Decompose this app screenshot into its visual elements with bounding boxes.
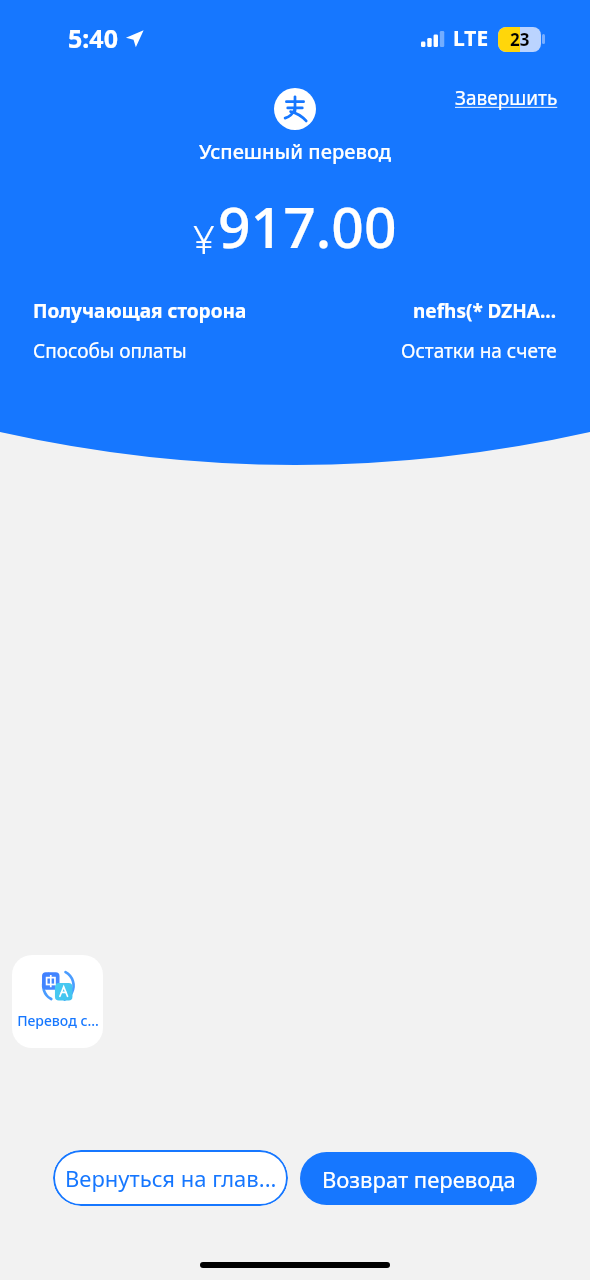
staticText: 917.00 <box>218 187 397 265</box>
staticText: Получающая сторона <box>33 298 247 324</box>
staticText: Завершить <box>455 85 558 111</box>
staticText: Остатки на счете <box>401 338 557 364</box>
staticText: 5:40 <box>68 21 118 55</box>
staticText: Успешный перевод <box>199 138 392 165</box>
button[interactable]: Возврат перевода <box>300 1152 537 1205</box>
staticText: 23 <box>510 28 530 51</box>
button[interactable]: Завершить <box>452 82 561 114</box>
staticText: Способы оплаты <box>33 338 187 364</box>
staticText: LTE <box>453 24 489 53</box>
staticText: Возврат перевода <box>322 1164 516 1194</box>
staticText: Перевод с... <box>17 1011 99 1030</box>
staticText: nefhs(* DZHA... <box>413 298 557 324</box>
staticText: Вернуться на глав... <box>65 1163 277 1193</box>
button[interactable]: Вернуться на глав... <box>53 1150 288 1206</box>
staticText: ¥ <box>193 213 215 265</box>
other: Alipay <box>274 88 316 130</box>
button[interactable]: Перевод страницы <box>12 955 103 1048</box>
